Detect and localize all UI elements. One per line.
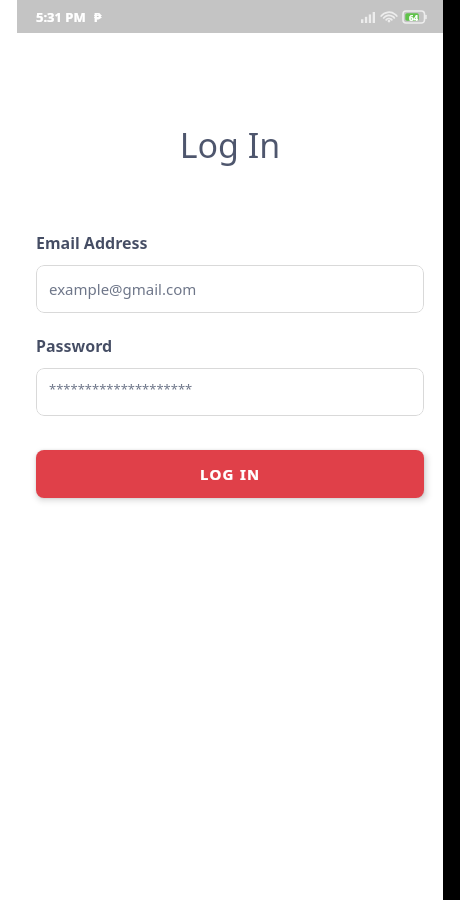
staticText: ₱: [94, 8, 102, 26]
button[interactable]: Email Address field: [36, 265, 424, 313]
staticText: Log In: [17, 122, 443, 168]
staticText: Password: [36, 335, 113, 357]
staticText: example@gmail.com: [49, 279, 197, 299]
staticText: ********************: [49, 380, 193, 398]
button[interactable]: LOG IN: [36, 450, 424, 498]
staticText: LOG IN: [200, 464, 261, 484]
staticText: 64: [409, 12, 419, 23]
staticText: 5:31 PM: [36, 8, 86, 26]
staticText: Email Address: [36, 232, 148, 254]
button[interactable]: Password field: [36, 368, 424, 416]
